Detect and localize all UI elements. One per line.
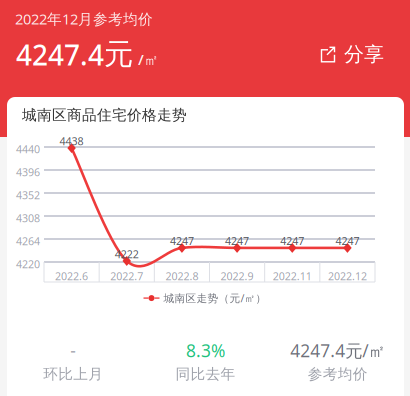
staticText: 4247 — [335, 234, 359, 248]
staticText: 8.3% — [186, 339, 225, 362]
staticText: 同比去年 — [175, 365, 235, 383]
staticText: 4308 — [16, 211, 40, 225]
staticText: 2022年12月参考均价 — [15, 9, 153, 28]
staticText: 2022.11 — [273, 269, 312, 283]
staticText: 4264 — [16, 234, 40, 248]
staticText: 2022.8 — [165, 269, 198, 283]
staticText: - — [70, 339, 76, 362]
staticText: 4440 — [16, 142, 40, 156]
staticText: 城南区走势（元/㎡） — [163, 291, 266, 305]
staticText: 城南区商品住宅价格走势 — [22, 106, 187, 124]
staticText: 分享 — [344, 42, 384, 67]
staticText: 2022.7 — [110, 269, 143, 283]
staticText: 参考均价 — [308, 365, 368, 383]
staticText: 4220 — [16, 257, 40, 271]
staticText: 2022.6 — [55, 269, 88, 283]
staticText: 4247 — [280, 234, 304, 248]
button[interactable]: 分享 — [312, 36, 392, 73]
staticText: 4352 — [16, 188, 40, 202]
staticText: /㎡ — [138, 50, 159, 69]
staticText: 4247 — [225, 234, 249, 248]
staticText: 2022.9 — [221, 269, 254, 283]
staticText: 环比上月 — [43, 365, 103, 383]
staticText: 4438 — [60, 134, 84, 148]
staticText: 4247 — [170, 234, 194, 248]
staticText: 元 — [104, 36, 133, 72]
staticText: 2022.12 — [328, 269, 367, 283]
staticText: 4247.4元/㎡ — [290, 339, 385, 362]
staticText: 4396 — [16, 165, 40, 179]
staticText: 4247.4 — [16, 36, 104, 73]
staticText: 4222 — [115, 247, 139, 261]
